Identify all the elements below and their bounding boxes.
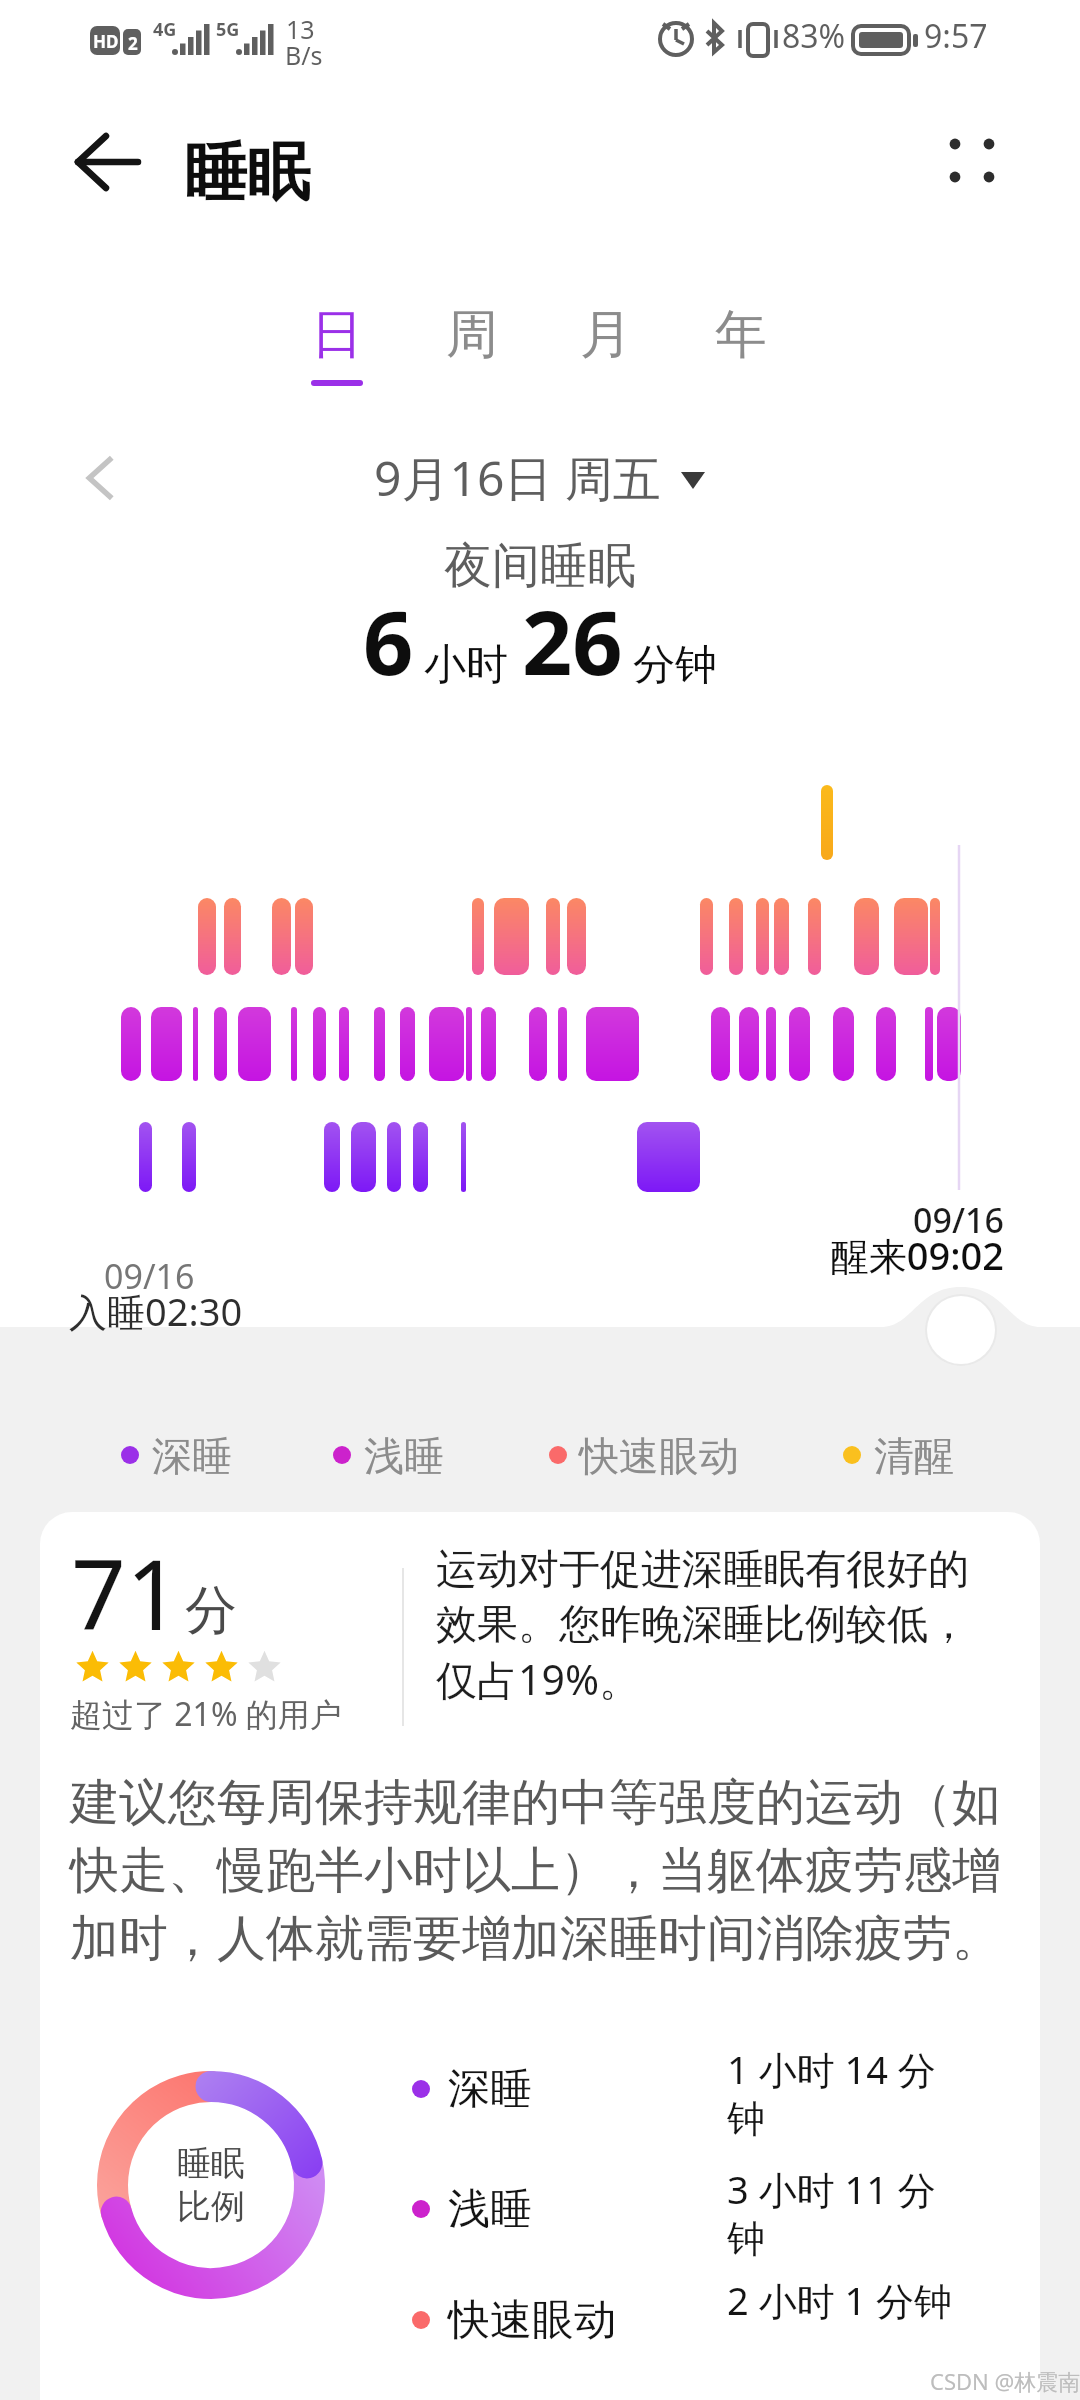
button[interactable]: 月 [544, 302, 668, 414]
staticText: 日 [311, 302, 363, 368]
staticText: 6 [363, 581, 414, 701]
staticText: 71 [71, 1527, 181, 1658]
staticText: 2 小时 1 分钟 [727, 2274, 953, 2326]
button[interactable]: Back [50, 114, 166, 212]
staticText: 运动对于促进深睡眠有很好的效果。您昨晚深睡比例较低，仅占19%。 [436, 1544, 984, 1707]
staticText: 9月16日 周五 [374, 445, 661, 511]
staticText: 清醒 [874, 1431, 954, 1481]
button[interactable]: 日 [275, 302, 399, 414]
staticText: 睡眠 [184, 133, 310, 212]
staticText: 夜间睡眠 [444, 536, 636, 596]
staticText: 深睡 [448, 2063, 532, 2116]
staticText: 09/16 [694, 1197, 1004, 1243]
staticText: 83% [782, 14, 846, 58]
staticText: 小时 [424, 639, 508, 692]
staticText: 钟 [727, 2215, 765, 2263]
staticText: CSDN @林震南 [930, 2366, 1080, 2396]
staticText: 快速眼动 [579, 1431, 739, 1481]
staticText: 1 小时 14 分 [727, 2043, 936, 2095]
button[interactable] [402, 2288, 982, 2352]
staticText: 4G [153, 17, 177, 42]
staticText: 分钟 [633, 639, 717, 692]
staticText: 浅睡 [364, 1431, 444, 1481]
staticText: 月 [580, 302, 632, 368]
button[interactable]: Previous day [64, 442, 136, 514]
staticText: 5G [216, 17, 240, 42]
staticText: 周 [446, 302, 498, 368]
button[interactable] [402, 2057, 982, 2121]
staticText: 13 [286, 12, 315, 46]
staticText: 2 [128, 32, 138, 55]
staticText: 9:57 [924, 14, 988, 58]
staticText: 睡眠 [177, 2142, 245, 2185]
button[interactable]: 9月16日 周五 [374, 440, 705, 516]
staticText: 醒来09:02 [694, 1229, 1004, 1281]
staticText: 09/16 [104, 1253, 195, 1299]
staticText: 深睡 [152, 1431, 232, 1481]
staticText: 年 [715, 302, 767, 368]
staticText: 入睡02:30 [69, 1285, 243, 1337]
button[interactable]: 周 [410, 302, 534, 414]
staticText: 超过了 21% 的用户 [70, 1692, 342, 1736]
button[interactable] [402, 2177, 982, 2241]
staticText: 26 [522, 581, 623, 701]
staticText: 快速眼动 [448, 2294, 616, 2347]
staticText: 3 小时 11 分 [727, 2163, 936, 2215]
button[interactable]: More options [920, 112, 1024, 210]
button[interactable]: 浅睡 [330, 1424, 446, 1486]
button[interactable]: 年 [679, 302, 803, 414]
staticText: 浅睡 [448, 2183, 532, 2236]
button[interactable]: 深睡 [118, 1424, 234, 1486]
staticText: 建议您每周保持规律的中等强度的运动（如快走、慢跑半小时以上），当躯体疲劳感增加时… [70, 1772, 1030, 1969]
staticText: 比例 [177, 2185, 245, 2228]
staticText: HD [93, 30, 119, 53]
staticText: B/s [285, 38, 323, 72]
button[interactable]: 快速眼动 [546, 1424, 743, 1486]
staticText: 分 [185, 1578, 237, 1644]
button[interactable]: 清醒 [840, 1424, 956, 1486]
staticText: 钟 [727, 2095, 765, 2143]
